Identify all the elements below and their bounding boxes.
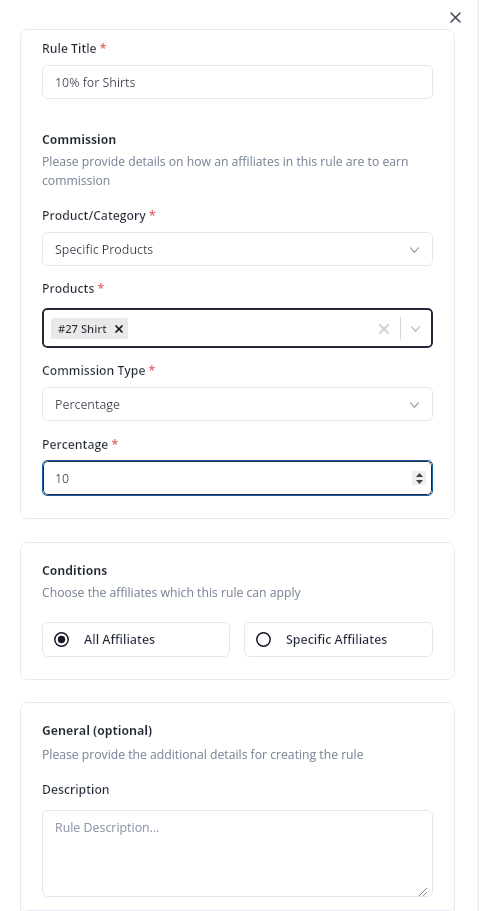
staticText: Specific Products: [55, 241, 154, 258]
staticText: All Affiliates: [84, 631, 156, 648]
staticText: General (optional): [42, 722, 153, 739]
staticText: Commission: [42, 131, 117, 148]
staticText: Percentage: [55, 396, 120, 413]
staticText: Products *: [42, 280, 105, 297]
staticText: Rule Title *: [42, 40, 107, 57]
button[interactable]: 10: [43, 461, 432, 495]
staticText: Please provide the additional details fo…: [42, 746, 364, 763]
staticText: Product/Category *: [42, 207, 156, 224]
staticText: Conditions: [42, 562, 108, 579]
staticText: Commission Type *: [42, 362, 156, 379]
button[interactable]: 10% for Shirts: [42, 65, 433, 99]
button[interactable]: Specific Affiliates: [244, 622, 433, 657]
staticText: 10: [55, 470, 70, 487]
staticText: Please provide details on how an affilia…: [42, 153, 433, 189]
button[interactable]: #27 Shirt: [42, 308, 433, 348]
staticText: Choose the affiliates which this rule ca…: [42, 584, 301, 601]
staticText: Description: [42, 781, 110, 798]
button[interactable]: Close: [444, 6, 466, 28]
button[interactable]: Percentage: [42, 387, 433, 421]
button[interactable]: Rule Description...: [42, 810, 433, 897]
button[interactable]: Specific Products: [42, 232, 433, 266]
staticText: Specific Affiliates: [286, 631, 388, 648]
staticText: Rule Description...: [55, 819, 160, 836]
staticText: 10% for Shirts: [55, 74, 136, 91]
staticText: Percentage *: [42, 436, 119, 453]
staticText: #27 Shirt: [58, 321, 107, 336]
button[interactable]: All Affiliates: [42, 622, 230, 657]
